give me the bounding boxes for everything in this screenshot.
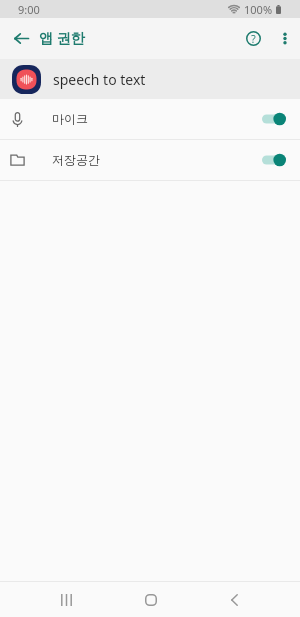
staticText: 저장공간 [52,152,100,167]
button[interactable]: Back [3,18,39,59]
button[interactable]: Back [201,582,267,617]
staticText: speech to text [53,70,146,89]
staticText: 100% [244,2,273,17]
button[interactable]: 저장공간 [0,140,300,180]
button[interactable]: More options [272,18,298,59]
staticText: 9:00 [18,2,40,17]
staticText: ? [251,31,256,46]
staticText: 마이크 [52,111,88,126]
button[interactable]: Help [238,18,268,59]
button[interactable]: speech to text [0,59,300,99]
button[interactable]: Recents [32,582,100,617]
staticText: 앱 권한 [39,28,85,47]
button[interactable]: 마이크 [0,99,300,139]
button[interactable]: Home [100,582,201,617]
button[interactable]: Toggle permission [262,109,286,129]
button[interactable]: Toggle permission [262,150,286,170]
